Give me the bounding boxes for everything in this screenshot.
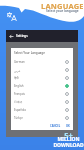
staticText: Français xyxy=(14,92,25,96)
staticText: 日本語 xyxy=(14,100,23,104)
button[interactable]: 日本語 xyxy=(14,98,69,106)
staticText: Española xyxy=(14,108,26,112)
button[interactable]: عربي xyxy=(14,66,69,74)
staticText: Türkçe xyxy=(14,116,23,120)
staticText: DOWNLOAD xyxy=(53,142,84,149)
staticText: Settings xyxy=(16,34,28,38)
button[interactable]: OK xyxy=(66,124,70,128)
button[interactable]: Türkçe xyxy=(14,114,69,122)
staticText: German xyxy=(14,60,25,64)
staticText: LANGUAGE xyxy=(41,1,84,11)
button[interactable]: CANCEL xyxy=(50,124,61,128)
button[interactable]: हिंदी xyxy=(14,74,69,82)
staticText: हिंदी xyxy=(14,76,19,80)
staticText: عربي xyxy=(14,69,21,72)
button[interactable]: Española xyxy=(14,106,69,114)
button[interactable]: Français xyxy=(14,90,69,98)
staticText: MILLION xyxy=(57,136,80,143)
staticText: Select Your Language xyxy=(14,51,45,55)
staticText: Select your language xyxy=(46,9,79,13)
button[interactable]: Back xyxy=(9,34,14,39)
button[interactable]: Translate xyxy=(7,11,17,21)
button[interactable]: German xyxy=(14,58,69,66)
button[interactable]: English xyxy=(14,82,69,90)
staticText: English xyxy=(14,84,24,88)
staticText: 5+ xyxy=(64,130,73,140)
